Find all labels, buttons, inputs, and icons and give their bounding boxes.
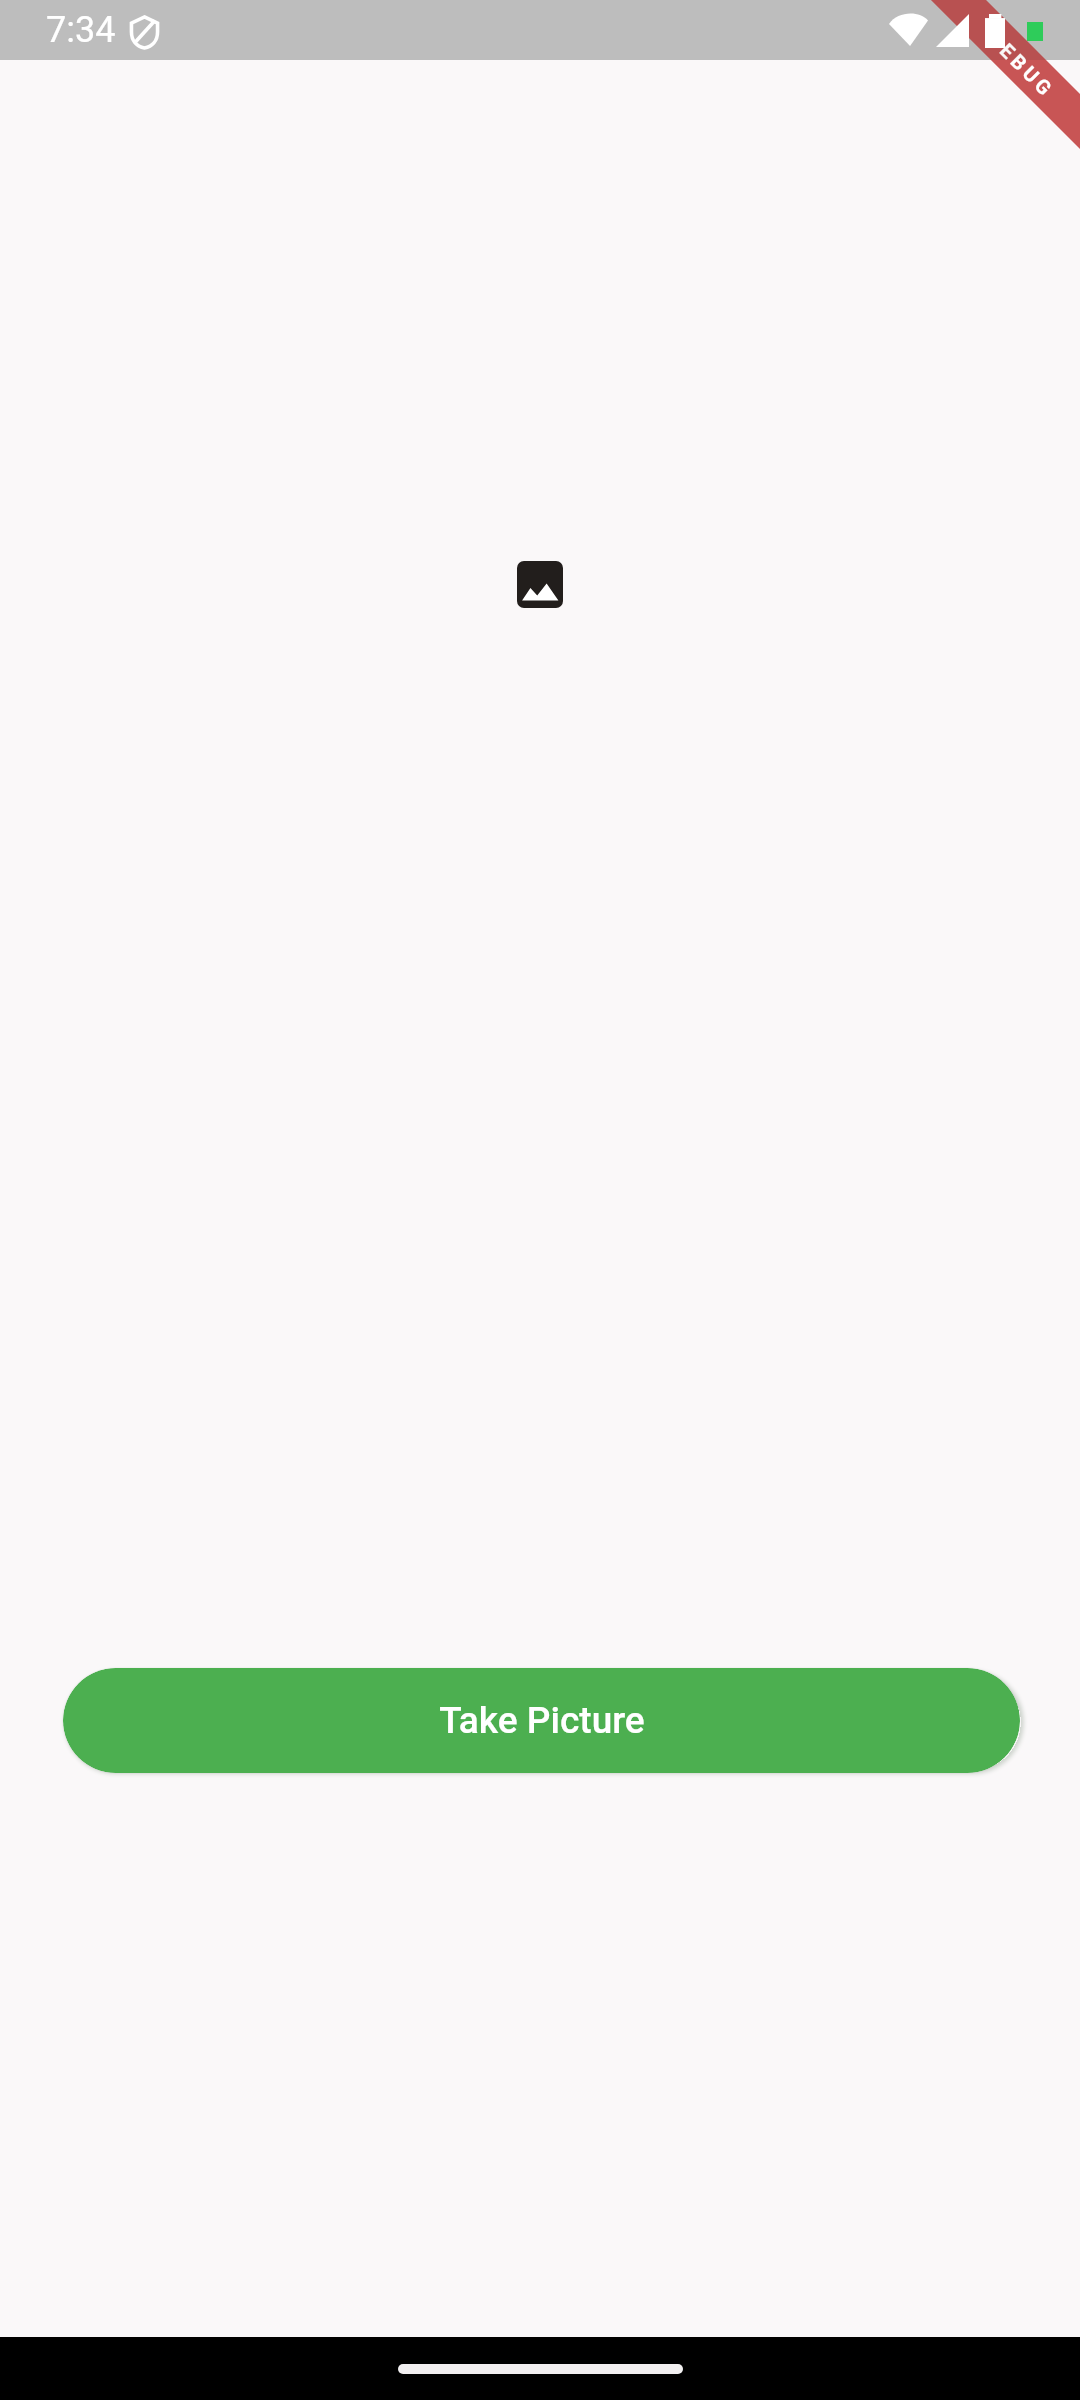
staticText: Take Picture	[439, 1699, 645, 1742]
button[interactable]: Take Picture	[63, 1668, 1020, 1773]
staticText: 7:34	[46, 9, 116, 51]
other: No image selected	[517, 561, 563, 608]
other: Protection status	[130, 16, 159, 48]
staticText: DEBUG	[984, 27, 1059, 102]
